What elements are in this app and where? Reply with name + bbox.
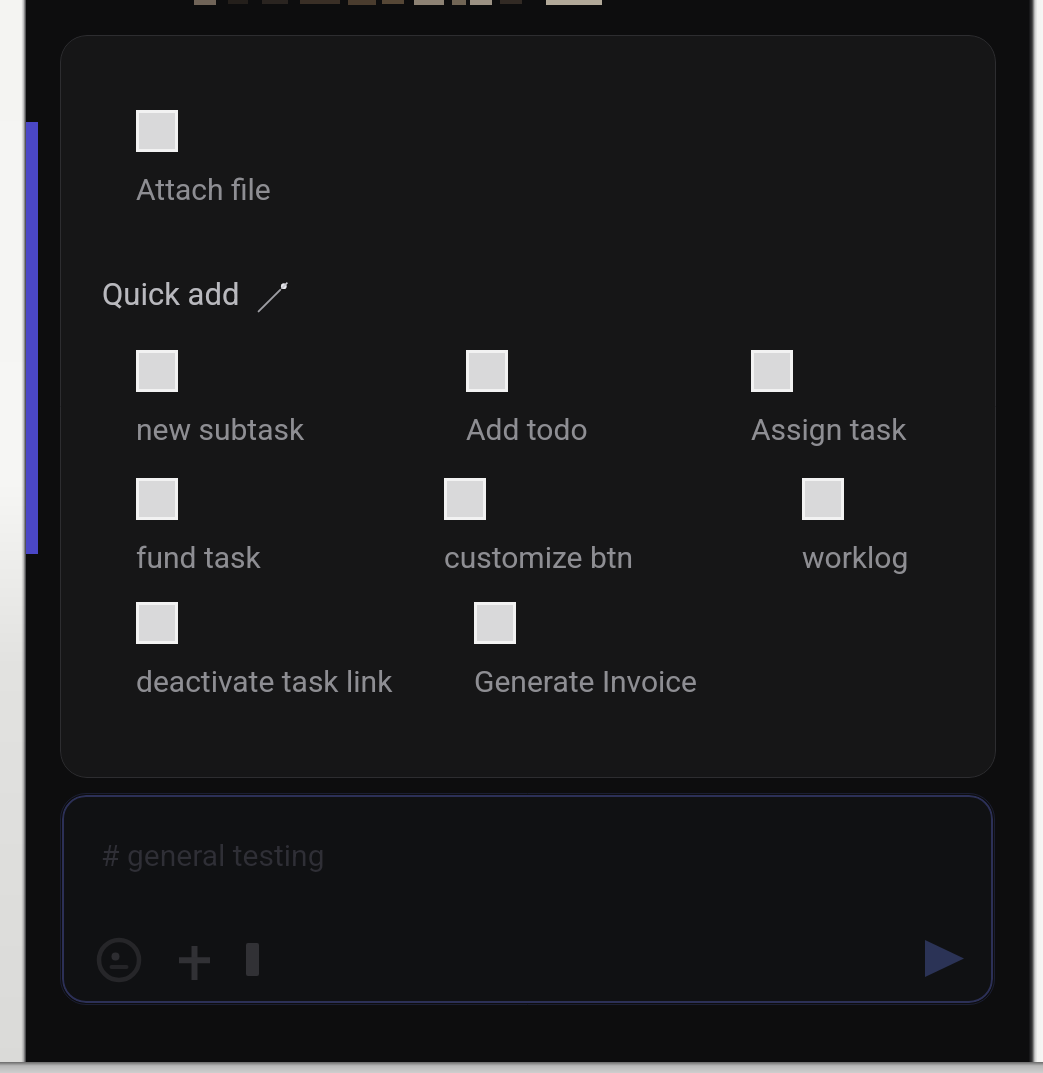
staticText: new subtask [136, 412, 305, 447]
staticText: customize btn [444, 540, 634, 575]
button[interactable]: # general testing [62, 795, 993, 1003]
staticText: Add todo [466, 412, 588, 447]
button[interactable]: Send [907, 921, 981, 995]
staticText: deactivate task link [136, 664, 393, 699]
button[interactable]: customize btn [444, 478, 634, 575]
button[interactable]: Generate Invoice [474, 602, 697, 699]
button[interactable]: Format text [222, 929, 282, 989]
button[interactable]: Add attachment [163, 932, 225, 994]
staticText: fund task [136, 540, 261, 575]
staticText: Attach file [136, 172, 271, 207]
staticText: worklog [802, 540, 909, 575]
button[interactable]: Emoji [85, 926, 153, 994]
button[interactable]: worklog [802, 478, 909, 575]
staticText: # general testing [101, 838, 325, 873]
staticText: Assign task [751, 412, 907, 447]
staticText: Generate Invoice [474, 664, 697, 699]
button[interactable]: fund task [136, 478, 261, 575]
button[interactable]: deactivate task link [136, 602, 393, 699]
button[interactable]: Assign task [751, 350, 907, 447]
staticText: Quick add [102, 276, 240, 312]
button[interactable]: Add todo [466, 350, 588, 447]
button[interactable]: Attach file [136, 110, 271, 207]
button[interactable]: new subtask [136, 350, 305, 447]
